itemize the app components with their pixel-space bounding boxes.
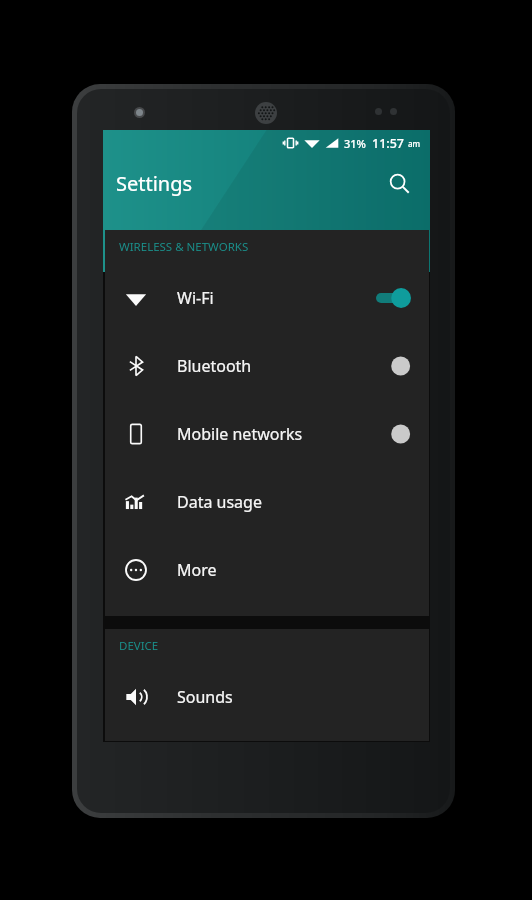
staticText: am [408,138,421,149]
button[interactable]: Bluetooth [105,332,429,400]
button[interactable]: Sounds [105,663,429,731]
button[interactable]: Toggle off [375,355,411,377]
staticText: Bluetooth [177,355,252,377]
button[interactable]: More [105,536,429,604]
staticText: WIRELESS & NETWORKS [119,239,249,255]
button[interactable]: Mobile networks [105,400,429,468]
button[interactable]: Search [379,163,419,203]
staticText: More [177,559,217,581]
staticText: Data usage [177,491,262,513]
staticText: 31% [344,136,366,151]
staticText: Settings [116,170,193,197]
staticText: 11:57 [372,135,405,152]
staticText: DEVICE [119,638,159,654]
button[interactable]: Wi-Fi [105,264,429,332]
button[interactable]: Data usage [105,468,429,536]
button[interactable]: Toggle off [375,423,411,445]
staticText: Mobile networks [177,423,303,445]
staticText: Sounds [177,686,233,708]
staticText: Wi-Fi [177,287,214,309]
button[interactable]: Wi-Fi toggle on [375,287,411,309]
